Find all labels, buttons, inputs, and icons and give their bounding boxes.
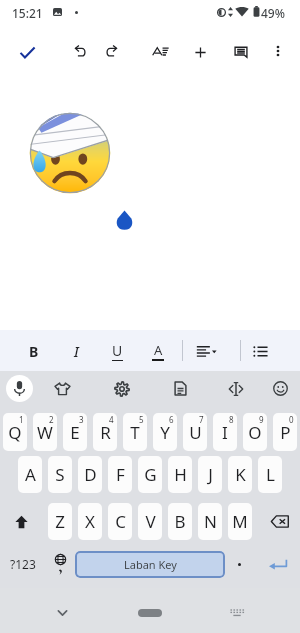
staticText: I (74, 342, 79, 361)
button[interactable]: G (138, 456, 162, 493)
staticText: S (55, 463, 65, 486)
staticText: G (144, 463, 157, 486)
button[interactable]: Y (153, 413, 177, 451)
button[interactable]: U (183, 413, 207, 451)
staticText: O (248, 421, 262, 444)
button[interactable]: More options (262, 35, 294, 67)
button[interactable]: F (108, 456, 132, 493)
staticText: ?123 (10, 556, 36, 572)
button[interactable]: Backspace (259, 503, 300, 540)
button[interactable]: Enter (258, 547, 298, 581)
staticText: 7 (199, 414, 204, 425)
staticText: 0 (289, 414, 294, 425)
staticText: P (280, 421, 291, 444)
button[interactable]: O (243, 413, 267, 451)
button[interactable]: V (138, 503, 162, 540)
button[interactable]: Text colour (144, 336, 172, 366)
button[interactable]: Z (48, 503, 72, 540)
button[interactable]: Period (225, 547, 253, 581)
button[interactable]: Done (12, 36, 44, 68)
staticText: T (130, 421, 140, 444)
button[interactable]: I (213, 413, 237, 451)
staticText: U (112, 341, 123, 360)
staticText: D (84, 463, 97, 486)
button[interactable]: Redo (95, 35, 127, 67)
button[interactable]: R (93, 413, 117, 451)
staticText: N (204, 510, 217, 533)
staticText: A (154, 341, 163, 359)
staticText: C (115, 510, 126, 533)
staticText: 2 (49, 414, 54, 425)
staticText: 4 (109, 414, 114, 425)
button[interactable]: B (168, 503, 192, 540)
staticText: X (85, 510, 95, 533)
button[interactable]: Move cursor (222, 375, 249, 402)
staticText: J (208, 463, 213, 486)
staticText: 15:21 (12, 5, 43, 21)
staticText: 49% (261, 5, 285, 21)
button[interactable]: C (108, 503, 132, 540)
button[interactable]: Bold (20, 336, 48, 366)
staticText: 6 (169, 414, 174, 425)
staticText: B (29, 342, 39, 361)
button[interactable]: K (228, 456, 252, 493)
staticText: K (235, 463, 246, 486)
button[interactable]: Change language (46, 547, 74, 581)
button[interactable]: Laban Key (75, 551, 225, 578)
button[interactable]: Formatting (144, 35, 176, 67)
button[interactable]: M (228, 503, 252, 540)
button[interactable]: L (258, 456, 282, 493)
button[interactable]: Settings (108, 375, 135, 402)
staticText: 5 (139, 414, 144, 425)
staticText: U (189, 421, 202, 444)
staticText: 9 (259, 414, 264, 425)
staticText: Z (55, 510, 65, 533)
staticText: I (222, 421, 228, 444)
button[interactable]: Switch keyboard (217, 593, 257, 633)
button[interactable]: E (63, 413, 87, 451)
button[interactable]: Underline (103, 336, 131, 366)
button[interactable]: P (273, 413, 297, 451)
button[interactable]: Home (130, 593, 170, 633)
staticText: L (266, 463, 275, 486)
button[interactable]: D (78, 456, 102, 493)
button[interactable]: J (198, 456, 222, 493)
staticText: Laban Key (124, 557, 177, 572)
button[interactable]: T (123, 413, 147, 451)
button[interactable]: ?123 (3, 547, 43, 581)
staticText: Y (160, 421, 170, 444)
button[interactable]: Insert (184, 36, 216, 68)
staticText: M (232, 510, 248, 533)
staticText: A (25, 463, 36, 486)
button[interactable]: Clipboard (167, 375, 194, 402)
staticText: B (174, 510, 186, 533)
staticText: E (70, 421, 80, 444)
button[interactable]: Shift (1, 503, 41, 540)
button[interactable]: W (33, 413, 57, 451)
staticText: R (100, 421, 111, 444)
staticText: W (37, 421, 53, 444)
button[interactable]: Undo (64, 35, 96, 67)
staticText: V (145, 510, 156, 533)
button[interactable]: S (48, 456, 72, 493)
button[interactable]: A (18, 456, 42, 493)
button[interactable]: Q (3, 413, 27, 451)
staticText: H (174, 463, 187, 486)
button[interactable]: Emoji (267, 375, 294, 402)
button[interactable]: X (78, 503, 102, 540)
button[interactable]: Comments (225, 36, 257, 68)
button[interactable]: Italic (62, 336, 90, 366)
staticText: 3 (79, 414, 84, 425)
button[interactable]: N (198, 503, 222, 540)
button[interactable]: Hide keyboard (back) (42, 593, 82, 633)
button[interactable]: H (168, 456, 192, 493)
button[interactable]: Stickers (49, 375, 76, 402)
staticText: Q (8, 421, 22, 444)
button[interactable]: Voice input (6, 375, 33, 402)
staticText: 8 (229, 414, 234, 425)
button[interactable]: Bulleted list (247, 336, 273, 366)
staticText: 1 (19, 414, 24, 425)
button[interactable]: Alignment (192, 336, 220, 366)
staticText: F (116, 463, 125, 486)
